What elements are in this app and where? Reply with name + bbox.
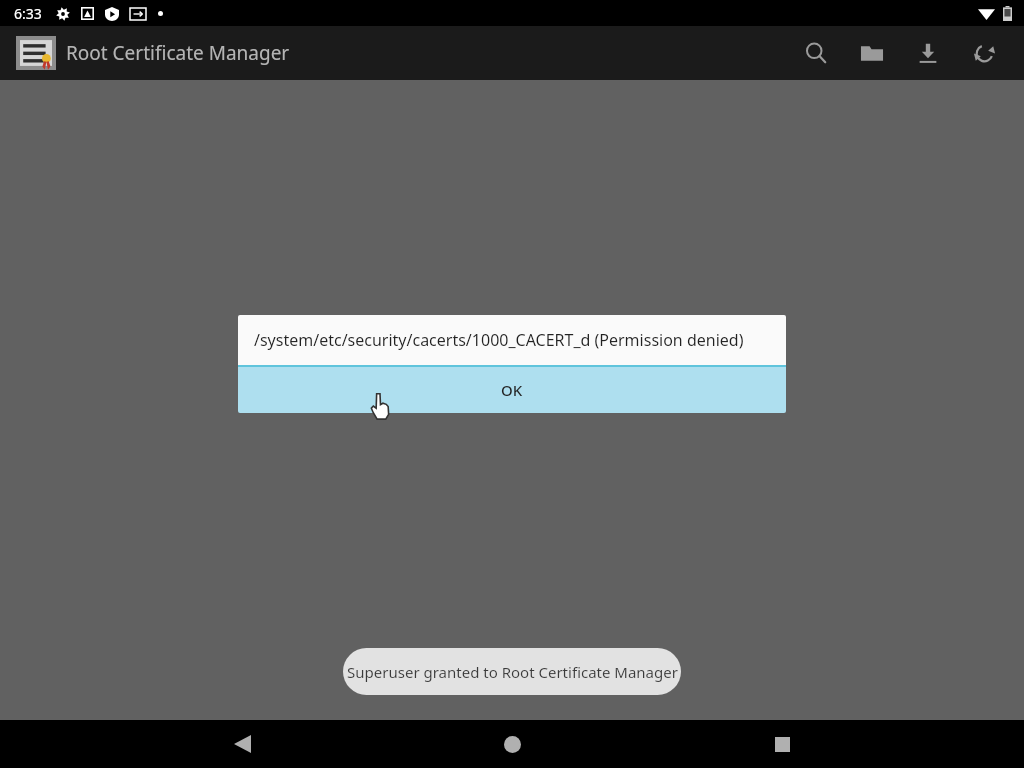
staticText: /system/etc/security/cacerts/1000_CACERT… [254,329,744,351]
button[interactable]: Home [484,720,540,768]
button[interactable]: Search [788,26,844,80]
staticText: Superuser granted to Root Certificate Ma… [347,662,678,682]
button[interactable]: Recent apps [754,720,810,768]
staticText: OK [501,380,523,400]
button[interactable]: Download [900,26,956,80]
staticText: 6:33 [14,4,42,23]
button[interactable]: Back [214,720,270,768]
button[interactable]: Open folder [844,26,900,80]
button[interactable]: OK [238,367,786,413]
staticText: Root Certificate Manager [66,40,290,66]
button[interactable]: Refresh [956,26,1012,80]
